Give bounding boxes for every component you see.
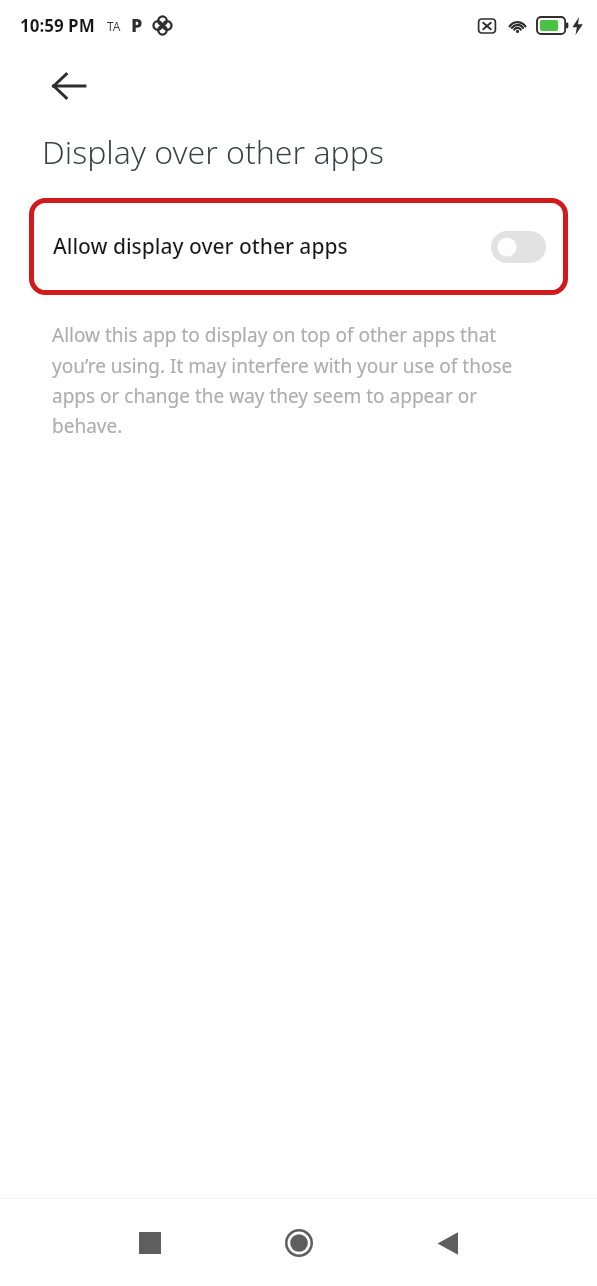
button[interactable]: Back (420, 1215, 476, 1271)
staticText: TA (107, 18, 121, 34)
button[interactable]: Back (36, 53, 102, 119)
staticText: 10:59 PM (20, 14, 95, 37)
button[interactable]: Recent apps (122, 1215, 178, 1271)
button[interactable]: Home (271, 1215, 327, 1271)
staticText: Allow display over other apps (53, 232, 348, 261)
staticText: P (131, 13, 143, 38)
staticText: Allow this app to display on top of othe… (52, 322, 525, 438)
staticText: Display over other apps (42, 130, 384, 174)
button[interactable]: Allow display over other apps (491, 231, 546, 263)
button[interactable]: Allow display over other apps (34, 203, 563, 290)
